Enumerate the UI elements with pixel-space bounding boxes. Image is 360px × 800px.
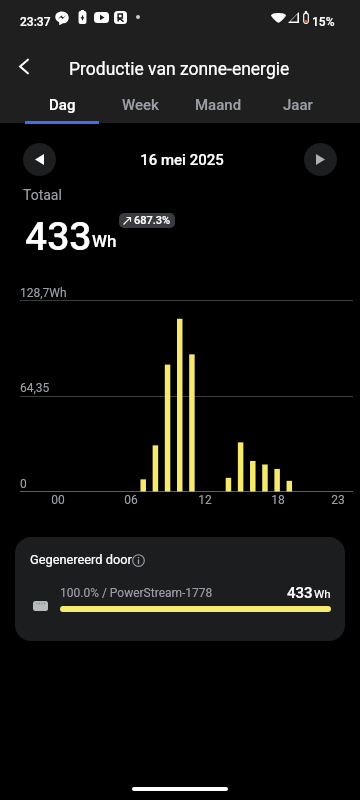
staticText: 16 mei 2025 [140, 151, 224, 169]
button[interactable]: Next day [304, 143, 337, 176]
staticText: Gegenereerd door [30, 552, 132, 567]
staticText: Wh [314, 587, 331, 600]
button[interactable]: Maand [179, 88, 258, 122]
staticText: Week [122, 96, 159, 114]
staticText: 433 [287, 584, 313, 602]
staticText: 23 [331, 493, 345, 507]
staticText: 15% [312, 15, 335, 29]
staticText: 06 [124, 493, 138, 507]
staticText: Totaal [23, 187, 62, 203]
staticText: Maand [195, 96, 242, 114]
staticText: 64,35 [20, 381, 50, 395]
staticText: 128,7Wh [20, 286, 67, 300]
staticText: 23:37 [20, 15, 51, 29]
staticText: 687.3% [134, 214, 171, 227]
button[interactable]: Jaar [258, 88, 337, 122]
staticText: 18 [271, 493, 285, 507]
button[interactable]: Dag [23, 88, 101, 122]
staticText: 12 [198, 493, 212, 507]
staticText: Wh [92, 231, 117, 251]
staticText: 0 [20, 477, 27, 491]
staticText: 433 [25, 214, 92, 260]
staticText: 00 [51, 493, 65, 507]
staticText: 100.0% / PowerStream-1778 [60, 586, 213, 600]
staticText: Dag [49, 96, 76, 114]
button[interactable]: Gegenereerd door [15, 537, 345, 641]
button[interactable]: Previous day [23, 143, 56, 176]
button[interactable]: Week [101, 88, 179, 122]
button[interactable]: Back [4, 46, 44, 86]
staticText: Jaar [283, 96, 313, 114]
staticText: Productie van zonne-energie [69, 59, 290, 80]
